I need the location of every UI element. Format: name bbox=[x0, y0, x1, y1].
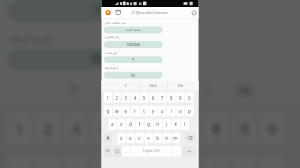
button[interactable]: Video frame bbox=[0, 0, 300, 168]
